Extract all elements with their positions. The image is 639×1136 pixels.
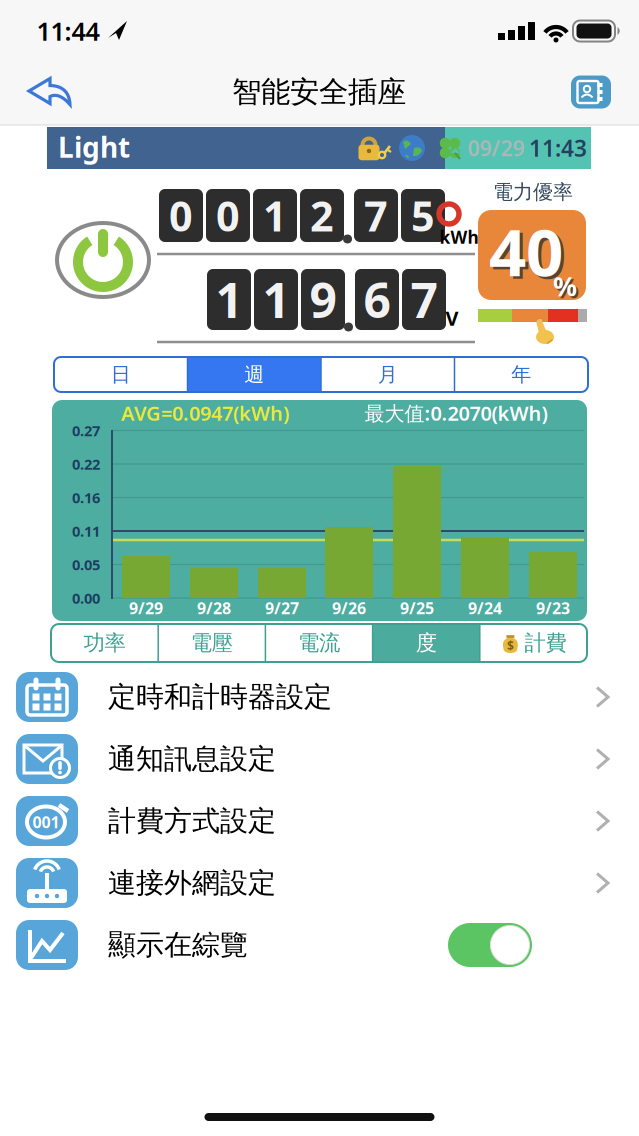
staticText: 最大值:0.2070(kWh): [364, 400, 547, 426]
button[interactable]: 電壓: [158, 624, 265, 662]
staticText: 9/25: [400, 597, 434, 619]
button[interactable]: 週: [187, 357, 321, 392]
button[interactable]: 顯示在綜覽: [0, 914, 639, 976]
staticText: 年: [511, 362, 531, 387]
staticText: 7: [410, 268, 437, 331]
staticText: 7: [364, 188, 388, 243]
button[interactable]: 日: [54, 357, 187, 392]
staticText: 度: [416, 630, 437, 656]
button[interactable]: 年: [454, 357, 588, 392]
staticText: 功率: [84, 630, 126, 656]
staticText: 日: [111, 362, 131, 387]
staticText: 9: [309, 268, 336, 331]
staticText: 0.11: [72, 521, 100, 541]
staticText: 1: [263, 188, 287, 243]
staticText: 電流: [298, 630, 340, 656]
staticText: 40: [489, 208, 563, 294]
staticText: 顯示在綜覽: [108, 928, 248, 962]
staticText: 計費方式設定: [108, 804, 276, 838]
staticText: 定時和計時器設定: [108, 680, 332, 714]
staticText: 連接外網設定: [108, 866, 276, 900]
staticText: kWh: [439, 225, 478, 248]
staticText: 電壓: [191, 630, 233, 656]
staticText: 11:44: [36, 14, 99, 48]
staticText: 40: [492, 210, 566, 297]
staticText: 計費: [524, 630, 566, 656]
staticText: 6: [363, 268, 390, 331]
staticText: 0.22: [72, 454, 100, 474]
staticText: 9/23: [536, 597, 570, 619]
button[interactable]: 功率: [51, 624, 158, 662]
button[interactable]: 通知訊息設定: [0, 728, 639, 790]
button[interactable]: [55, 220, 151, 300]
staticText: %: [553, 268, 577, 304]
staticText: 0.16: [72, 488, 100, 507]
staticText: 9/26: [332, 597, 366, 619]
button[interactable]: $: [480, 624, 587, 662]
staticText: 5: [411, 188, 435, 243]
staticText: %: [555, 270, 579, 306]
button[interactable]: 連接外網設定: [0, 852, 639, 914]
staticText: 通知訊息設定: [108, 742, 276, 776]
staticText: 0.05: [72, 555, 100, 574]
button[interactable]: 度: [373, 624, 480, 662]
button[interactable]: 電流: [265, 624, 373, 662]
staticText: AVG=0.0947(kWh): [121, 400, 289, 426]
staticText: 9/24: [468, 597, 502, 619]
staticText: 9/29: [129, 597, 163, 619]
button[interactable]: [26, 77, 74, 107]
staticText: 0.00: [72, 588, 100, 608]
staticText: 2: [310, 188, 334, 243]
staticText: 0.27: [72, 421, 100, 440]
staticText: 1: [262, 268, 289, 331]
staticText: 月: [378, 362, 398, 387]
staticText: 9/27: [265, 597, 299, 619]
staticText: 9/28: [197, 597, 231, 619]
staticText: V: [445, 305, 458, 331]
staticText: Light: [58, 128, 130, 166]
staticText: 11:43: [529, 133, 587, 163]
staticText: 0: [216, 188, 240, 243]
button[interactable]: 001: [0, 790, 639, 852]
button[interactable]: [571, 75, 611, 108]
staticText: 電力優率: [493, 180, 573, 204]
staticText: $: [507, 637, 514, 653]
staticText: 09/29: [467, 134, 524, 162]
staticText: 0: [169, 188, 193, 243]
staticText: 1: [215, 268, 242, 331]
staticText: 智能安全插座: [232, 74, 406, 110]
staticText: 001: [32, 811, 59, 833]
button[interactable]: 定時和計時器設定: [0, 666, 639, 728]
button[interactable]: 月: [321, 357, 454, 392]
staticText: 週: [244, 362, 264, 387]
